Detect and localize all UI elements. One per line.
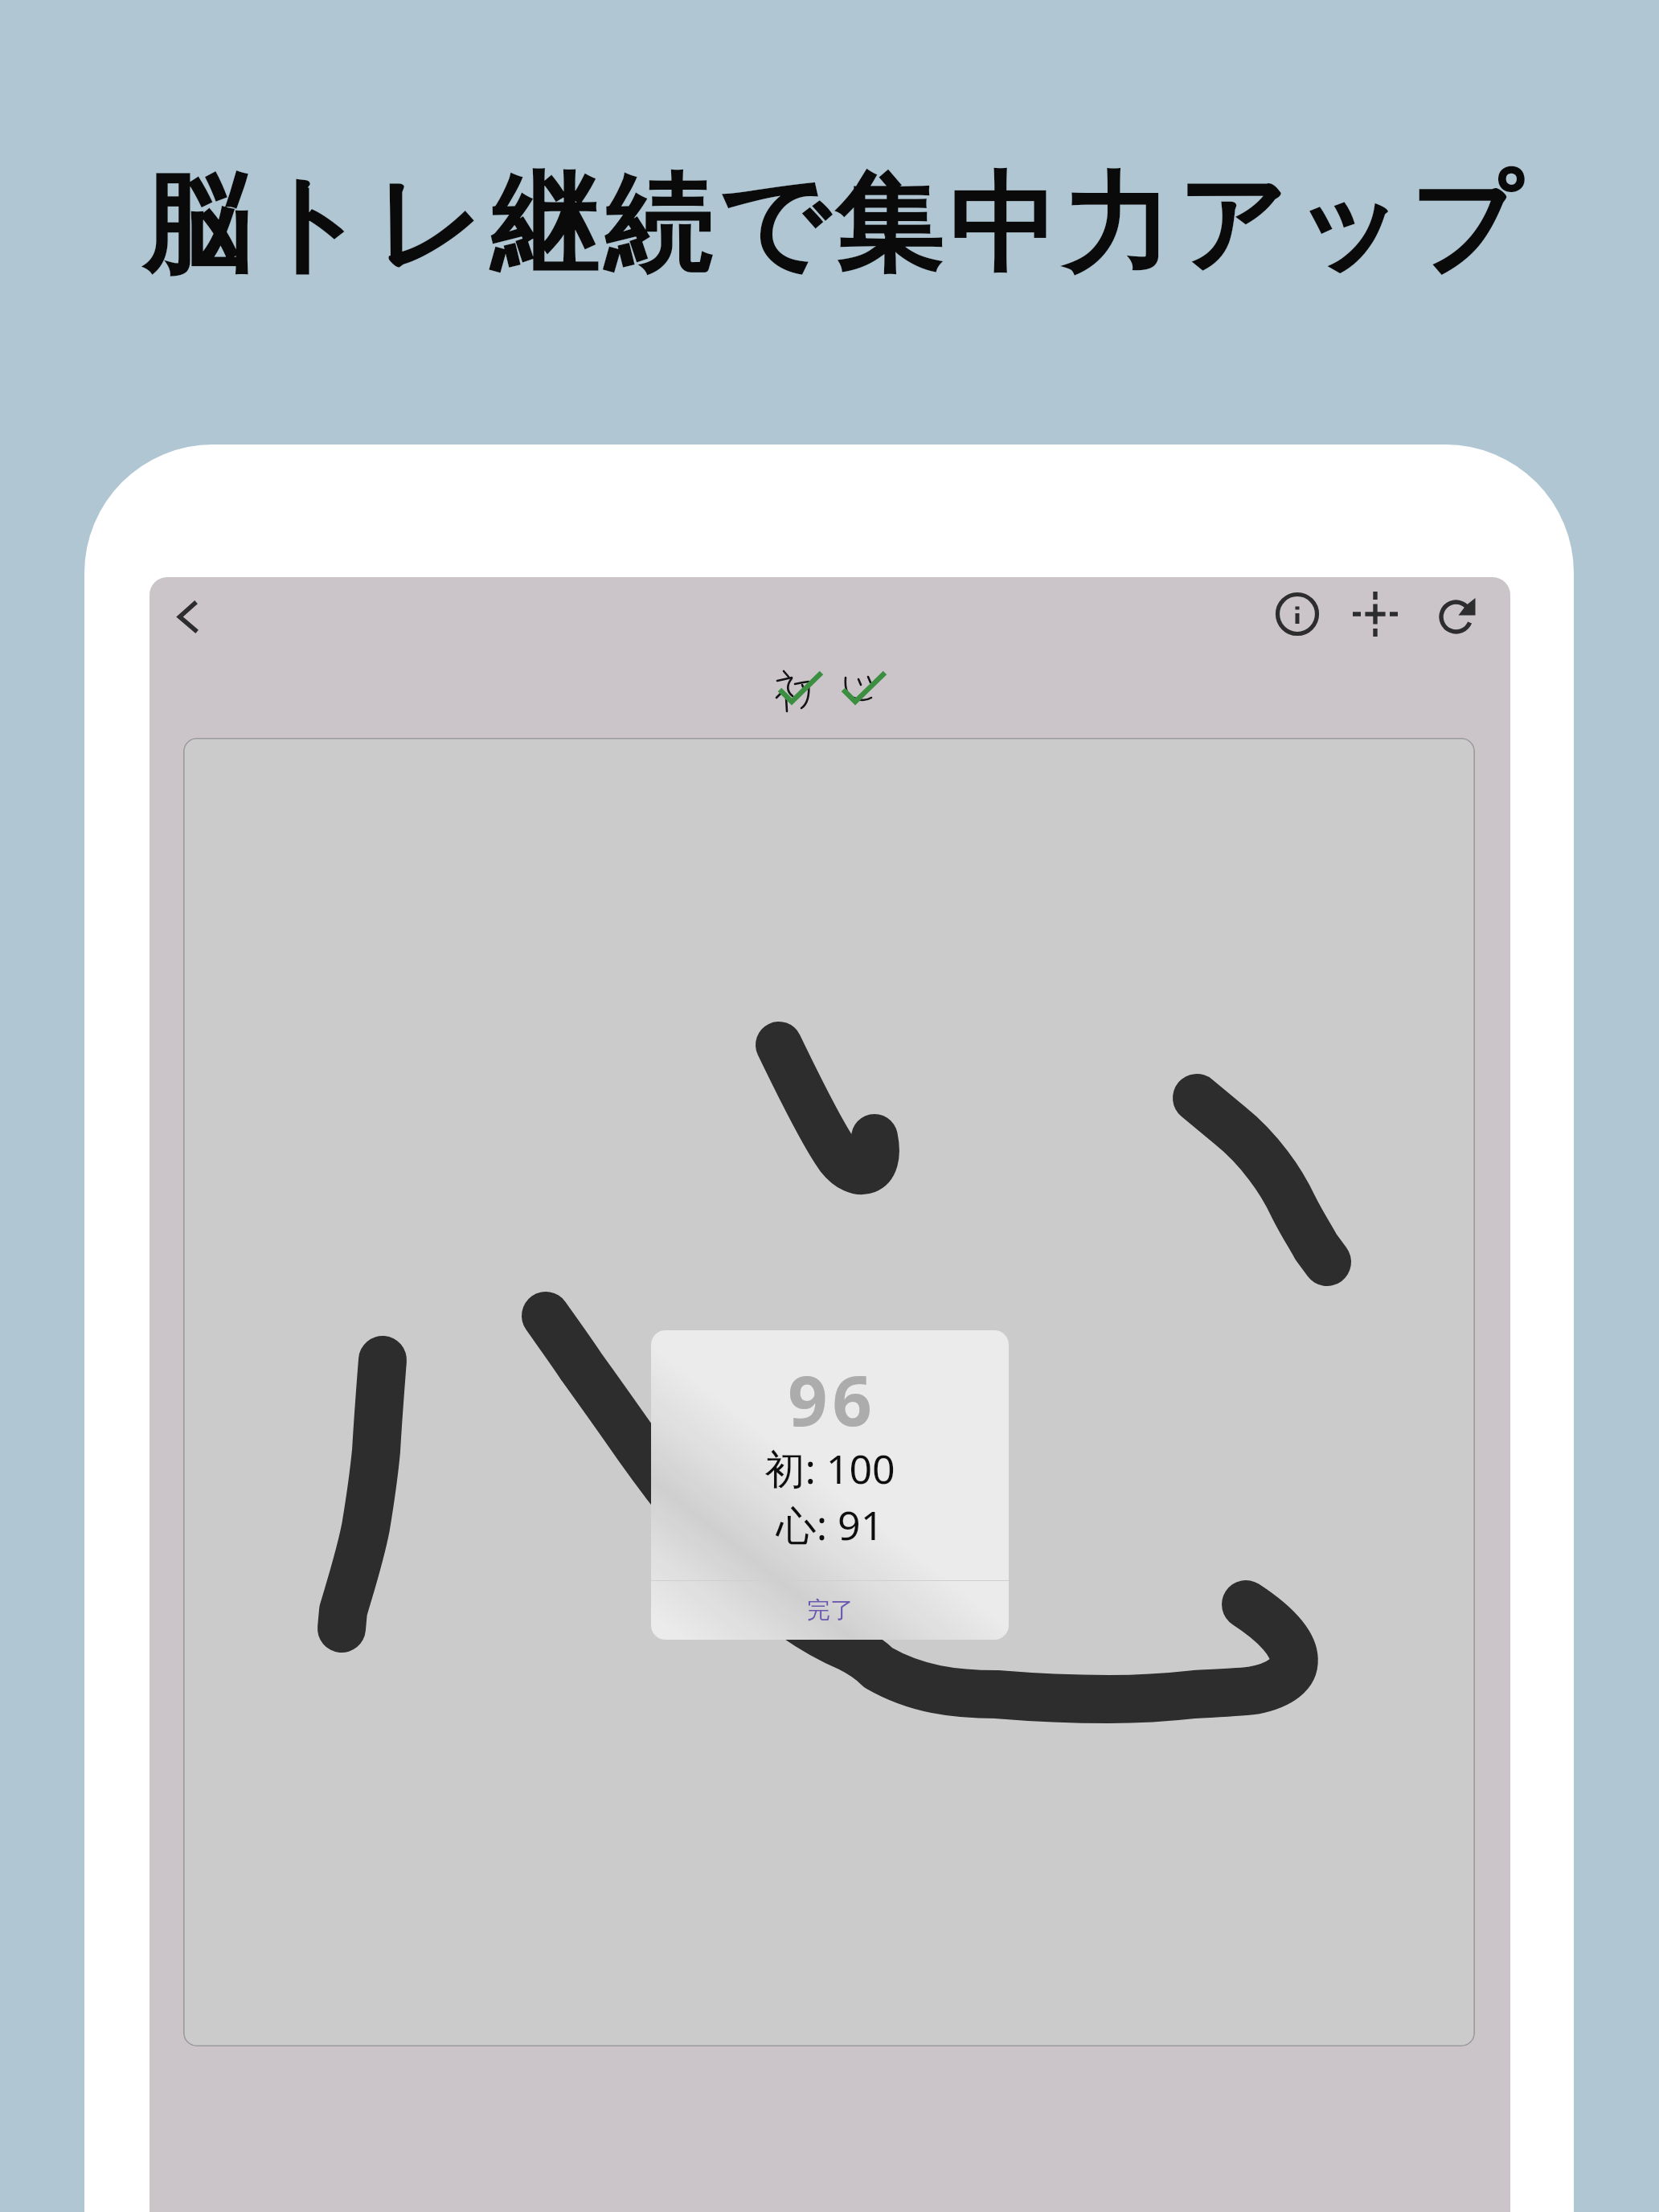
button[interactable]: 完了: [651, 1581, 1009, 1639]
button[interactable]: Information: [1262, 580, 1334, 653]
staticText: 脳トレ継続で集中力アップ: [5, 158, 1659, 293]
staticText: 完了: [807, 1596, 854, 1625]
button[interactable]: Back: [153, 580, 225, 653]
staticText: 心: 91: [651, 1497, 1009, 1552]
staticText: 96: [653, 1352, 1009, 1446]
button[interactable]: Toggle guide: [1339, 580, 1411, 653]
button[interactable]: Reset: [1421, 580, 1493, 653]
button[interactable]: Handwriting canvas: [183, 738, 1475, 2046]
staticText: 初: 100: [651, 1441, 1009, 1496]
